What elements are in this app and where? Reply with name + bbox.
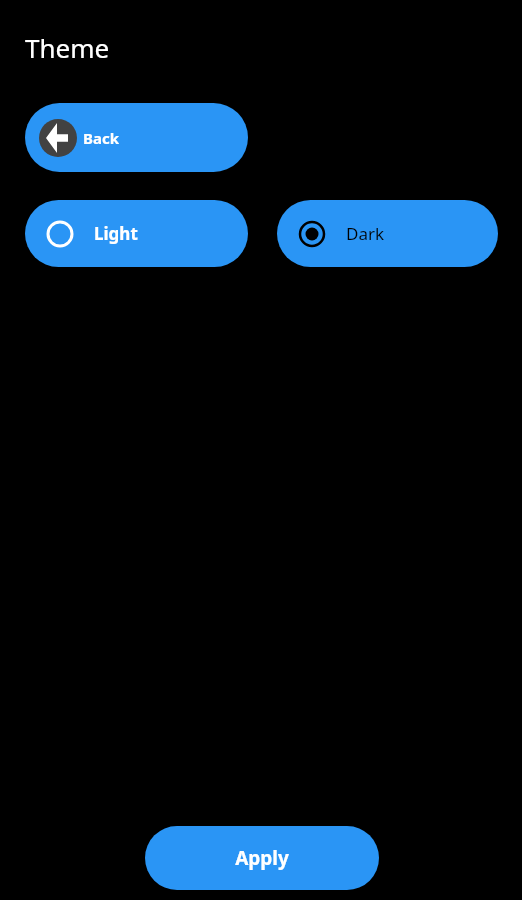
button[interactable]: Apply — [145, 826, 379, 890]
button[interactable]: Back — [25, 103, 248, 172]
button[interactable]: Light — [25, 200, 248, 267]
button[interactable]: Dark — [277, 200, 498, 267]
staticText: Light — [94, 222, 138, 245]
staticText: Apply — [235, 845, 289, 871]
staticText: Back — [83, 128, 120, 148]
staticText: Theme — [25, 30, 110, 65]
staticText: Dark — [346, 222, 385, 245]
